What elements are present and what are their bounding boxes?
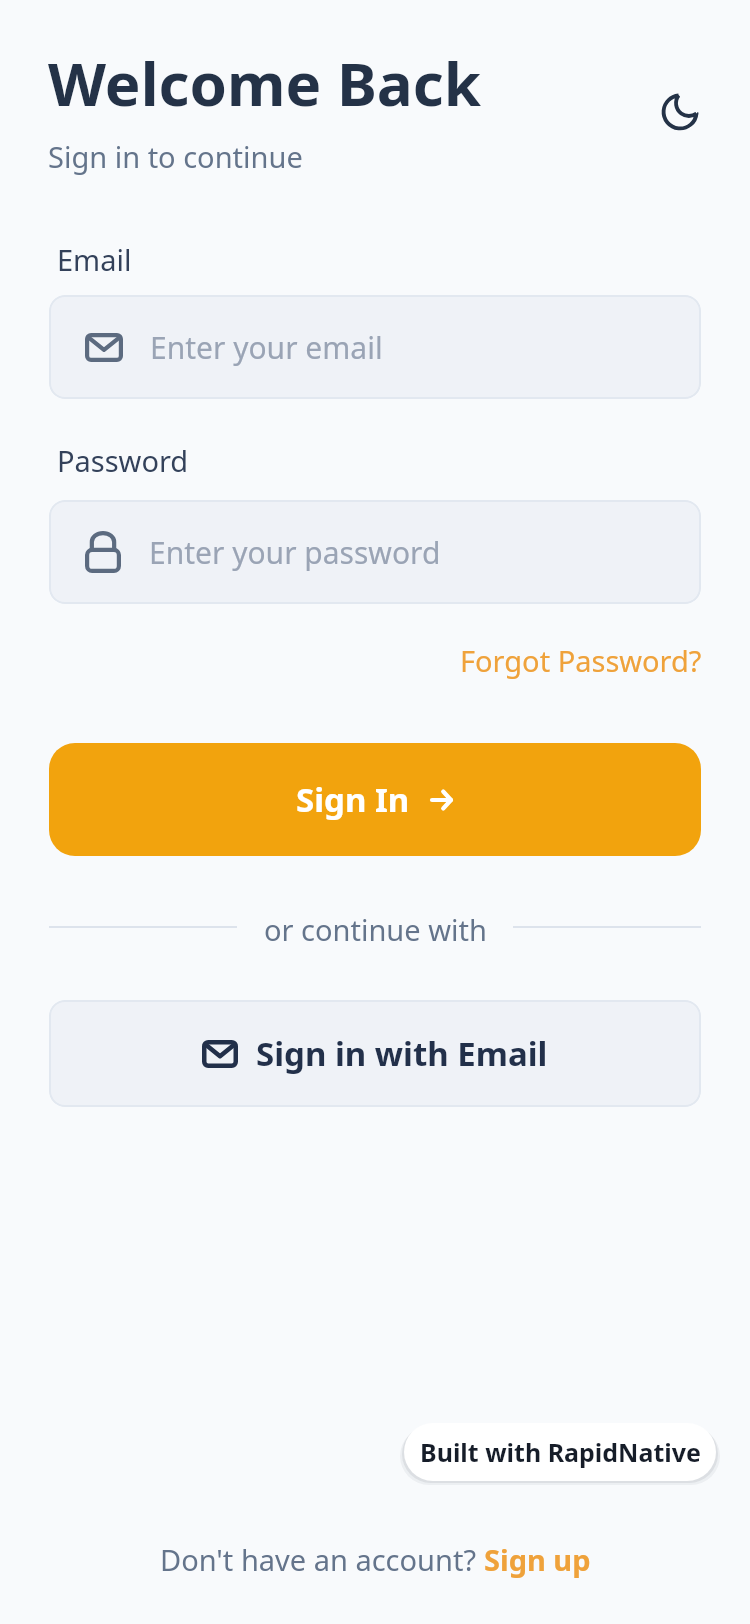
staticText: Don't have an account? — [160, 1540, 484, 1579]
staticText: Sign in with Email — [256, 1031, 548, 1076]
staticText: Enter your password — [149, 532, 441, 573]
staticText: Built with RapidNative — [420, 1435, 701, 1469]
button[interactable]: Forgot Password? — [460, 641, 702, 680]
staticText: Password — [57, 441, 189, 480]
button[interactable]: Sign In — [49, 743, 701, 856]
staticText: Welcome Back — [48, 42, 481, 124]
staticText: Sign up — [484, 1540, 591, 1579]
staticText: or continue with — [264, 910, 487, 949]
button[interactable]: Don't have an account? — [160, 1540, 591, 1579]
staticText: Sign In — [296, 777, 410, 822]
button[interactable]: Built with RapidNative — [404, 1423, 716, 1481]
staticText: Email — [57, 240, 132, 279]
button[interactable] — [658, 90, 702, 134]
staticText: Sign in to continue — [48, 137, 303, 176]
staticText: Forgot Password? — [460, 641, 702, 680]
button[interactable]: Sign in with Email — [49, 1000, 701, 1107]
button[interactable]: Enter your email — [49, 295, 701, 399]
button[interactable]: Enter your password — [49, 500, 701, 604]
staticText: Enter your email — [150, 327, 383, 368]
